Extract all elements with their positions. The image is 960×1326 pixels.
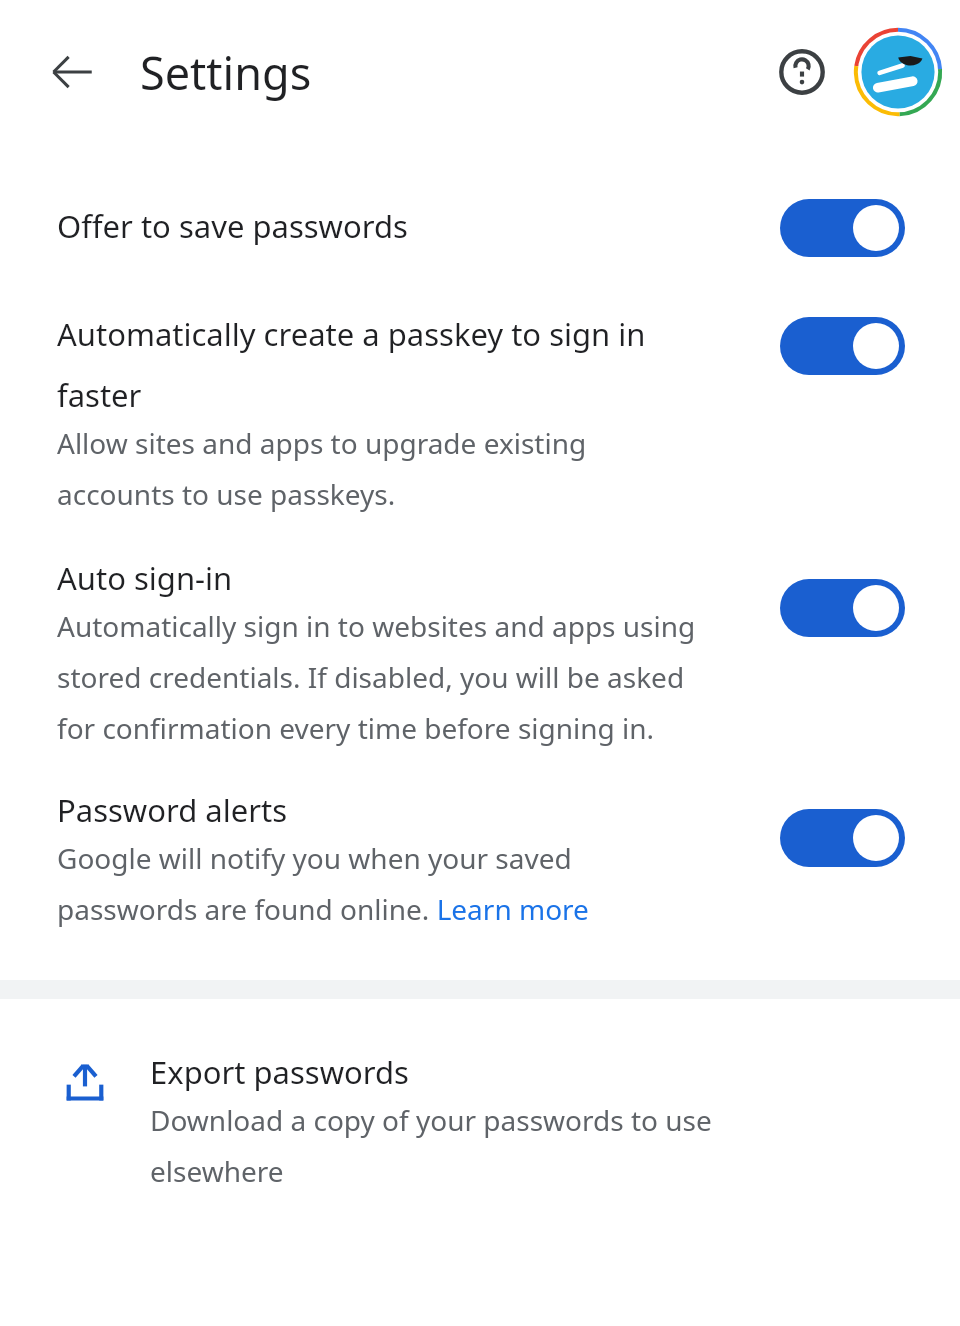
staticText: Offer to save passwords: [57, 205, 762, 247]
staticText: Google will notify you when your saved p…: [57, 839, 657, 928]
staticText: Allow sites and apps to upgrade existing…: [57, 424, 667, 513]
staticText: Settings: [140, 42, 312, 103]
button[interactable]: Toggle, on: [780, 809, 905, 867]
button[interactable]: Toggle, on: [780, 199, 905, 257]
staticText: Automatically create a passkey to sign i…: [57, 313, 667, 416]
staticText: Auto sign-in: [57, 557, 233, 599]
staticText: Download a copy of your passwords to use…: [150, 1101, 790, 1190]
button[interactable]: Export passwords: [0, 999, 960, 1220]
button[interactable]: Password alerts: [0, 747, 960, 928]
button[interactable]: Toggle, on: [780, 579, 905, 637]
staticText: Password alerts: [57, 789, 287, 831]
button[interactable]: Offer to save passwords: [0, 144, 960, 267]
button[interactable]: Help: [768, 38, 836, 106]
button[interactable]: Back: [34, 34, 110, 110]
button[interactable]: Automatically create a passkey to sign i…: [0, 267, 960, 513]
staticText: Export passwords: [150, 1051, 409, 1093]
button[interactable]: Toggle, on: [780, 317, 905, 375]
button[interactable]: Auto sign-in: [0, 513, 960, 747]
button[interactable]: Account: [848, 22, 948, 122]
staticText: Automatically sign in to websites and ap…: [57, 607, 717, 747]
